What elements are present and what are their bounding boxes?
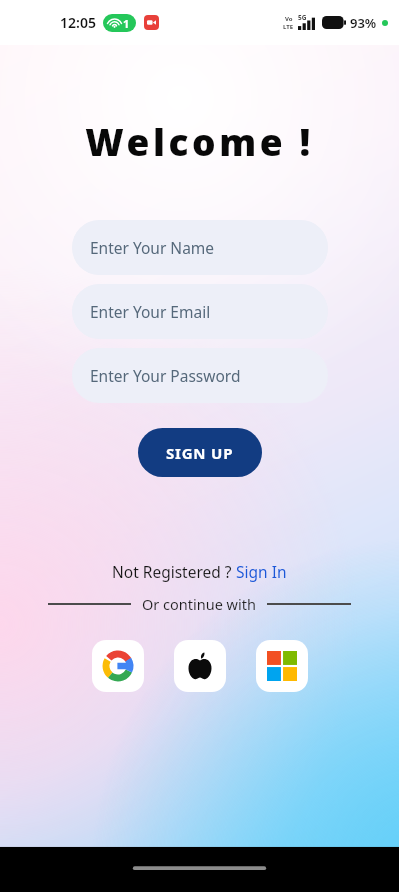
- button[interactable]: Sign in with Apple: [174, 640, 226, 692]
- button[interactable]: Enter Your Password: [72, 348, 328, 403]
- button[interactable]: Sign in with Google: [92, 640, 144, 692]
- staticText: SIGN UP: [166, 443, 234, 463]
- button[interactable]: Sign in with Microsoft: [256, 640, 308, 692]
- button[interactable]: SIGN UP: [138, 428, 262, 477]
- staticText: Enter Your Name: [90, 237, 215, 258]
- staticText: Vo: [285, 15, 293, 23]
- staticText: 12:05: [60, 13, 96, 32]
- staticText: 5G: [298, 13, 307, 22]
- button[interactable]: Enter Your Name: [72, 220, 328, 275]
- button[interactable]: Enter Your Email: [72, 284, 328, 339]
- staticText: Sign In: [236, 561, 287, 582]
- staticText: Or continue with: [142, 594, 256, 614]
- button[interactable]: Sign In: [236, 561, 287, 582]
- staticText: Enter Your Email: [90, 301, 211, 322]
- staticText: 1: [123, 16, 130, 31]
- staticText: Welcome !: [85, 116, 314, 166]
- staticText: LTE: [283, 23, 294, 31]
- staticText: Not Registered ?: [112, 561, 236, 582]
- staticText: 93%: [350, 14, 377, 32]
- staticText: Enter Your Password: [90, 365, 241, 386]
